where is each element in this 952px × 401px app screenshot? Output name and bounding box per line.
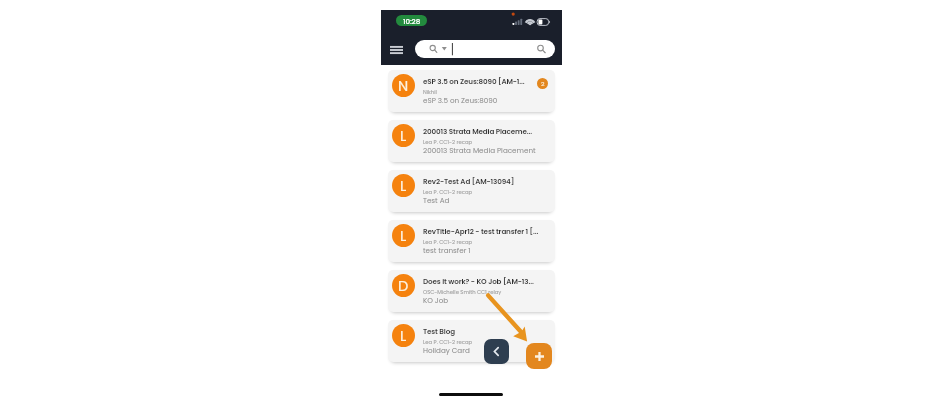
staticText: test transfer 1	[423, 245, 471, 255]
staticText: Test Ad	[423, 195, 450, 205]
staticText: L	[400, 226, 407, 246]
staticText: Rev2-Test Ad [AM-13094]	[423, 176, 515, 186]
staticText: Holiday Card	[423, 345, 470, 355]
staticText: 200013 Strata Media Placement	[423, 145, 536, 155]
staticText: 200013 Strata Media Placeme...	[423, 126, 533, 136]
button[interactable]: N	[388, 70, 555, 112]
staticText: eSP 3.5 on Zeus:8090 [AM-1...	[423, 76, 525, 86]
staticText: eSP 3.5 on Zeus:8090	[423, 95, 498, 105]
button[interactable]: D	[388, 270, 555, 312]
button[interactable]: Add	[526, 343, 552, 369]
staticText: Lea P. CC1-2 recap	[423, 338, 473, 345]
button[interactable]	[415, 40, 555, 58]
button[interactable]: L	[388, 170, 555, 212]
staticText: Does it work? - KO Job [AM-13...	[423, 276, 534, 286]
staticText: RevTitle-Apr12 - test transfer 1 [...	[423, 226, 539, 236]
staticText: Lea P. CC1-2 recap	[423, 188, 473, 195]
staticText: N	[398, 76, 409, 96]
staticText: 2	[541, 80, 545, 88]
button[interactable]: Menu	[386, 42, 406, 58]
button[interactable]: Back	[484, 339, 509, 364]
staticText: L	[400, 176, 407, 196]
staticText: Nikhil	[423, 88, 437, 95]
staticText: 10:28	[403, 16, 421, 26]
button[interactable]: L	[388, 120, 555, 162]
staticText: OSC-Michelle Smith CC1 relay	[423, 288, 502, 295]
button[interactable]: L	[388, 220, 555, 262]
staticText: KO Job	[423, 295, 449, 305]
staticText: Lea P. CC1-2 recap	[423, 238, 473, 245]
staticText: L	[400, 326, 407, 346]
staticText: L	[400, 126, 407, 146]
staticText: Lea P. CC1-2 recap	[423, 138, 473, 145]
staticText: D	[398, 276, 409, 296]
staticText: Test Blog	[423, 326, 455, 336]
button[interactable]: L	[388, 320, 555, 362]
